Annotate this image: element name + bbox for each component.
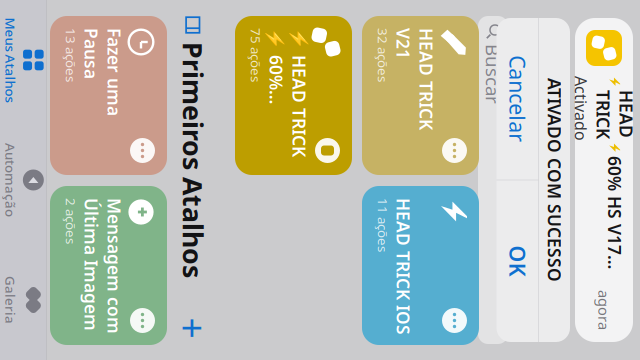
button[interactable]: Buscar bbox=[156, 0, 484, 22]
staticText: HEAD TRICK IOS bbox=[338, 85, 475, 108]
button[interactable]: Mensagem com Última Imagem bbox=[326, 333, 485, 360]
button[interactable]: ⚡ HEAD TRICK ⚡ 60%… bbox=[156, 148, 315, 265]
button[interactable]: Adicionar atalho bbox=[452, 291, 484, 323]
button[interactable]: Fazer uma Pausa bbox=[156, 333, 315, 360]
staticText: Buscar bbox=[184, 0, 244, 19]
staticText: ⚡ HEAD TRICK ⚡ 60%… bbox=[168, 189, 297, 235]
button[interactable]: Primeiros Atalhos bbox=[156, 289, 418, 325]
button[interactable]: HEAD TRICK V21 bbox=[156, 21, 315, 138]
staticText: 32 ações bbox=[168, 108, 222, 126]
staticText: 75 ações bbox=[168, 235, 222, 253]
button[interactable]: HEAD TRICK IOS bbox=[326, 21, 485, 138]
staticText: Primeiros Atalhos bbox=[182, 289, 418, 325]
staticText: 11 ações bbox=[338, 108, 392, 126]
staticText: HEAD TRICK V21 bbox=[168, 62, 270, 108]
staticText: + bbox=[457, 282, 478, 332]
